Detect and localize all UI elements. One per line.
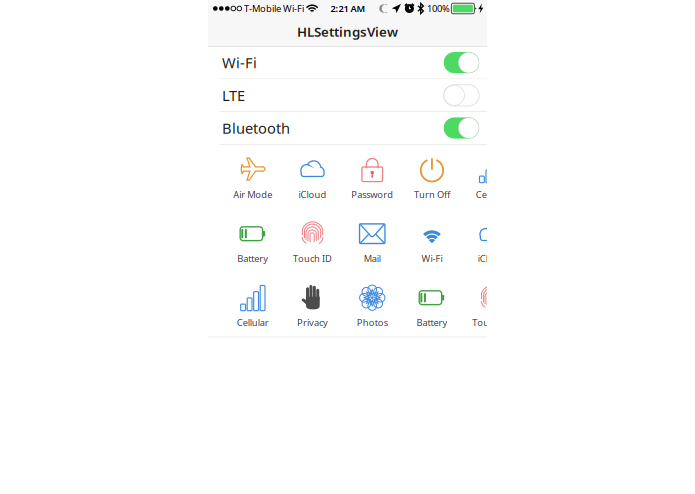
button[interactable]: Wi-Fi	[208, 47, 487, 79]
button[interactable]: Privacy	[283, 273, 342, 337]
staticText: Cellular	[476, 188, 508, 201]
button[interactable]: Battery	[223, 209, 283, 273]
staticText: Bluetooth	[222, 118, 290, 138]
staticText: Touch ID	[293, 252, 332, 265]
staticText: 2:21 AM	[330, 2, 365, 15]
button[interactable]: Air Mode	[223, 145, 283, 209]
button[interactable]: LTE	[208, 79, 487, 112]
staticText: Wi-Fi	[222, 53, 257, 72]
button[interactable]: Battery	[402, 273, 462, 337]
button[interactable]: iCloud	[462, 209, 521, 273]
staticText: Battery	[416, 316, 447, 329]
button[interactable]: Mail	[342, 209, 402, 273]
staticText: Touch ID	[472, 316, 511, 329]
staticText: Password	[351, 188, 393, 201]
staticText: Wi-Fi	[421, 252, 442, 265]
button[interactable]: Bluetooth	[208, 112, 487, 145]
button[interactable]: Touch ID	[462, 273, 521, 337]
staticText: Cellular	[237, 316, 269, 329]
button[interactable]: Turn Off	[402, 145, 462, 209]
staticText: iCloud	[299, 188, 327, 201]
staticText: 100%	[427, 2, 450, 15]
button[interactable]: Password	[342, 145, 402, 209]
staticText: Battery	[237, 252, 268, 265]
staticText: Mail	[364, 252, 381, 265]
button[interactable]: Cellular	[223, 273, 283, 337]
button[interactable]: Photos	[342, 273, 402, 337]
staticText: LTE	[222, 86, 245, 105]
button[interactable]: Wi-Fi	[402, 209, 462, 273]
staticText: iCloud	[478, 252, 506, 265]
staticText: HLSettingsView	[297, 23, 398, 40]
staticText: Air Mode	[233, 188, 272, 201]
staticText: Privacy	[297, 316, 328, 329]
button[interactable]: Cellular	[462, 145, 521, 209]
staticText: Turn Off	[414, 188, 450, 201]
staticText: Photos	[357, 316, 388, 329]
staticText: T-Mobile Wi-Fi	[244, 2, 304, 15]
button[interactable]: iCloud	[283, 145, 342, 209]
button[interactable]: Touch ID	[283, 209, 342, 273]
